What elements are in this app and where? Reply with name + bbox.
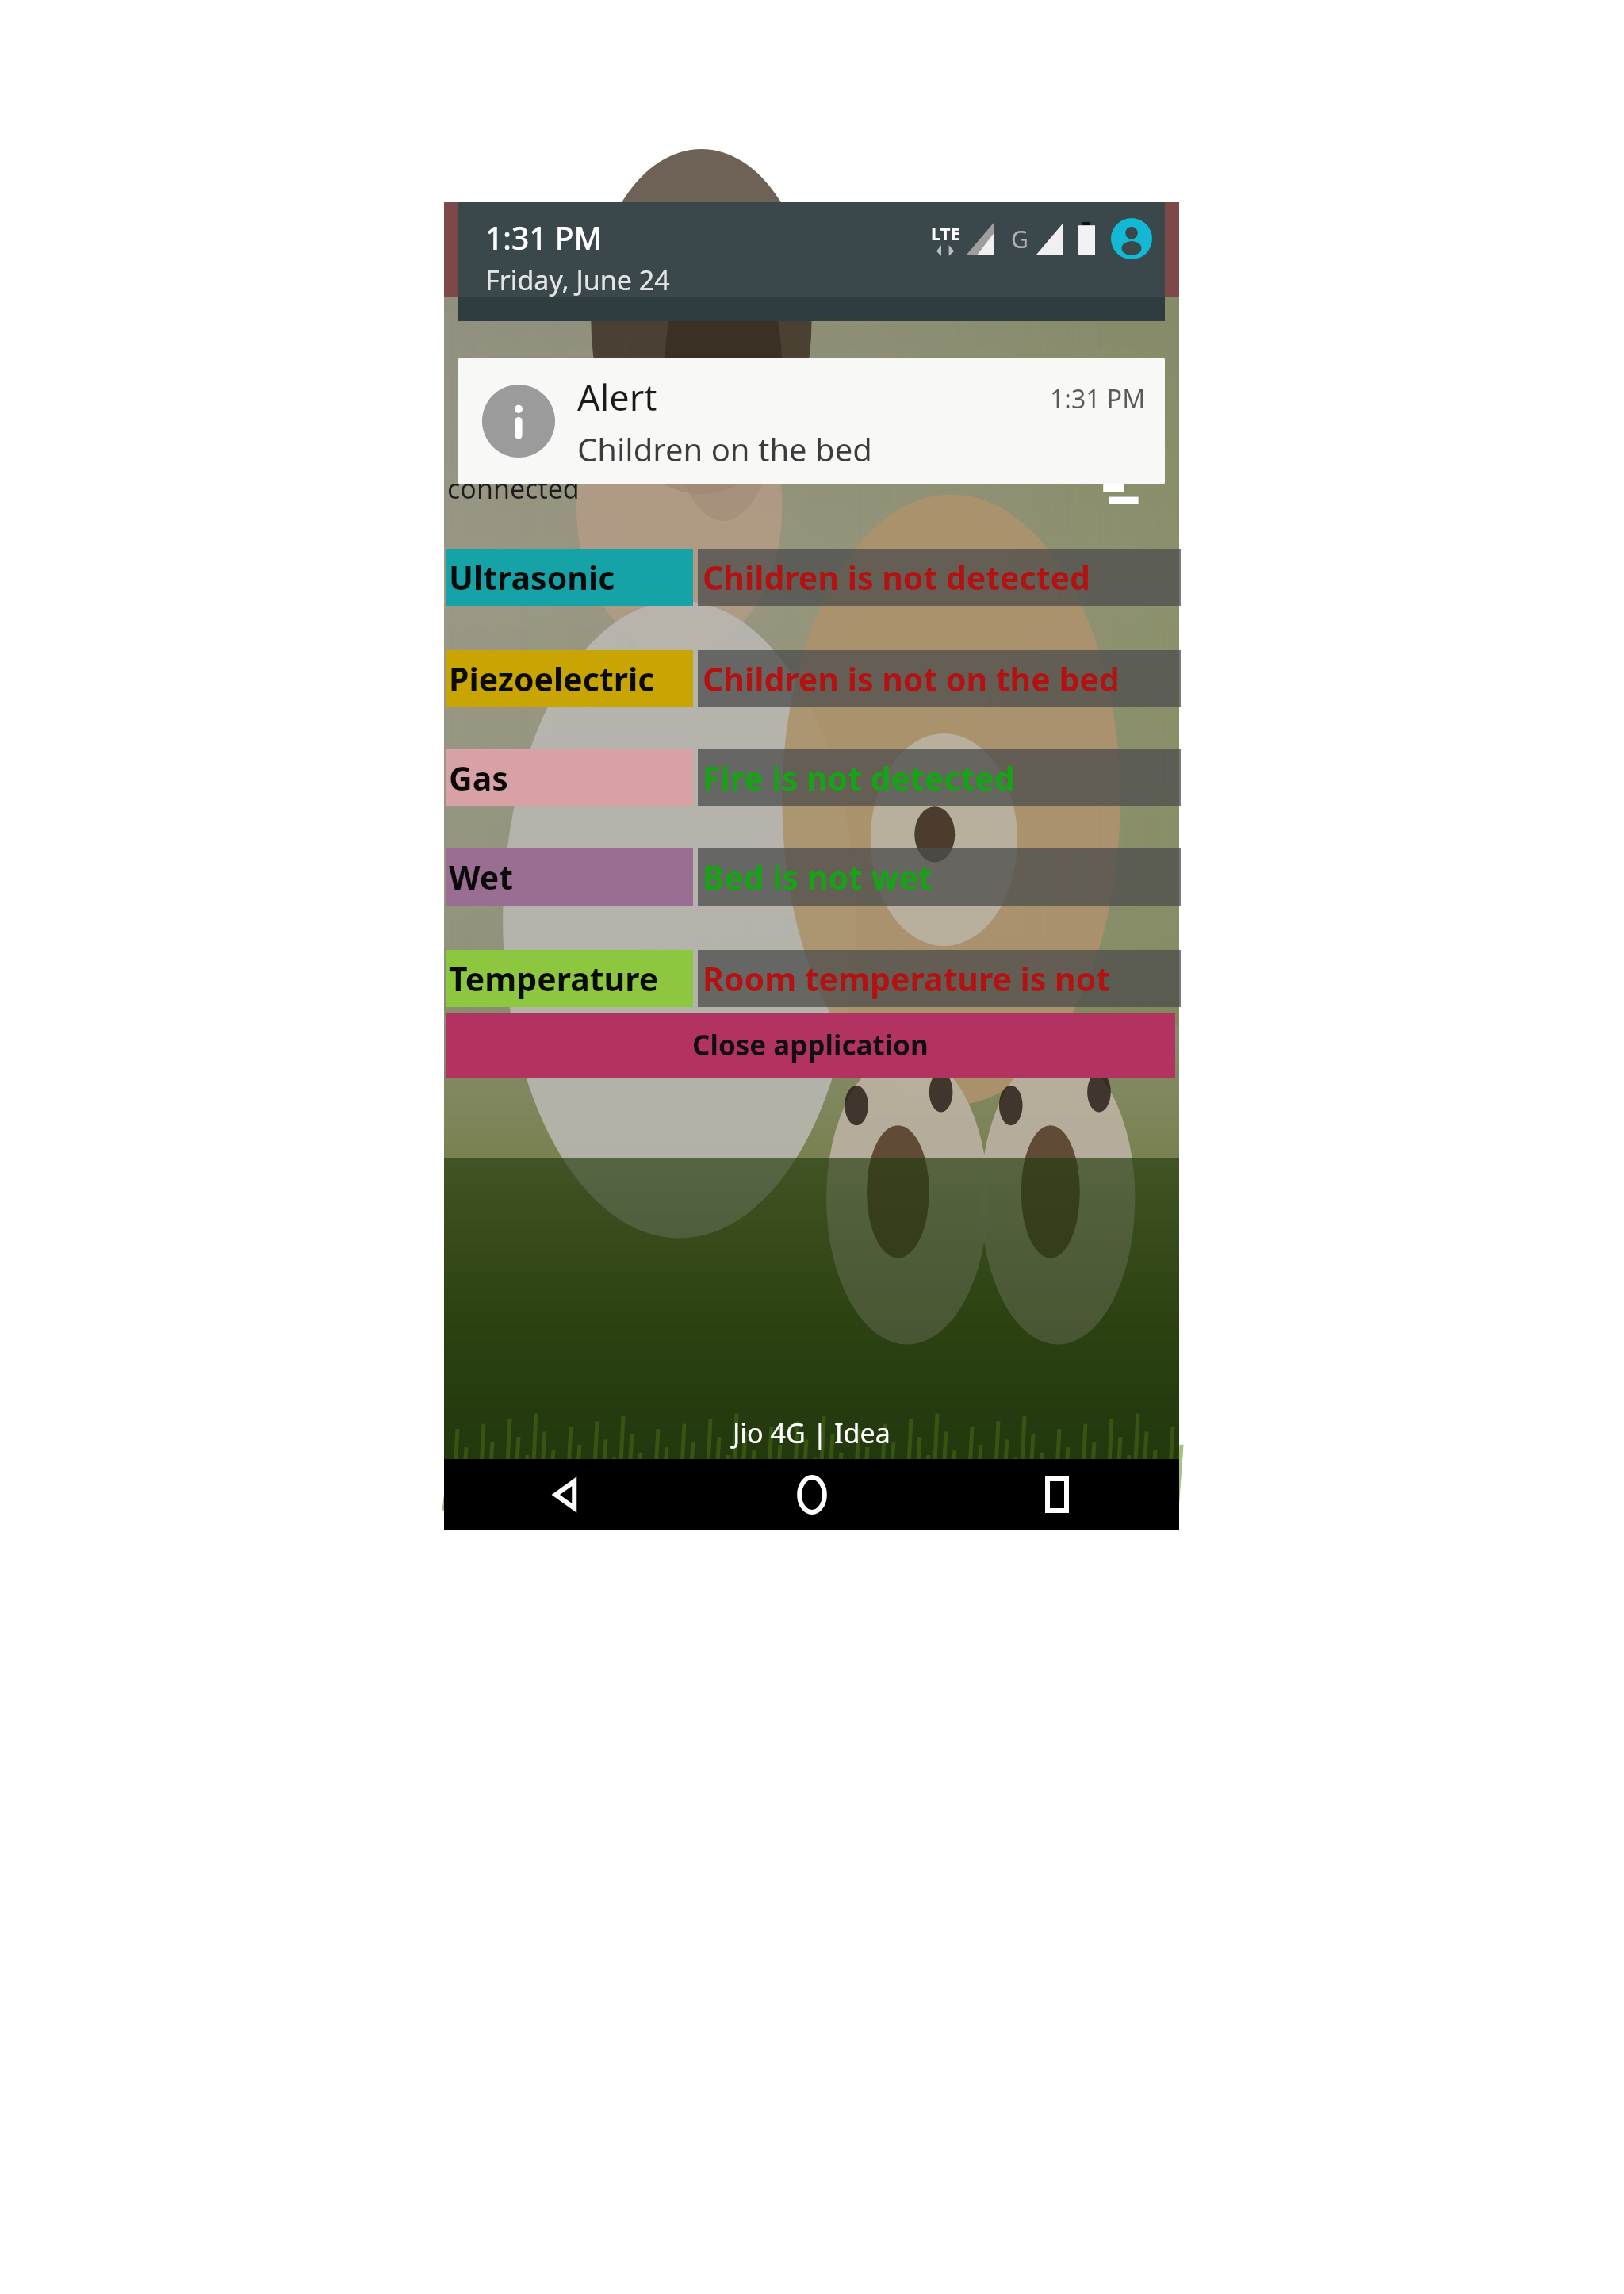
button[interactable]: Recents <box>934 1459 1179 1530</box>
staticText: Jio 4G | Idea <box>733 1415 891 1451</box>
staticText: Temperature <box>449 956 659 1001</box>
button[interactable]: Account <box>1111 218 1152 259</box>
button[interactable]: Home <box>689 1459 934 1530</box>
staticText: Close application <box>692 1026 929 1064</box>
staticText: Wet <box>449 855 514 899</box>
staticText: Alert <box>577 373 657 421</box>
button[interactable]: Alert <box>458 358 1165 484</box>
staticText: Friday, June 24 <box>485 262 670 297</box>
staticText: 1:31 PM <box>1050 381 1146 416</box>
staticText: G <box>1011 223 1028 255</box>
button[interactable]: Back <box>444 1459 689 1530</box>
staticText: Ultrasonic <box>449 555 615 599</box>
staticText: Bed is not wet <box>703 855 933 899</box>
staticText: 1:31 PM <box>485 216 603 259</box>
button[interactable]: Sort <box>1093 465 1140 513</box>
staticText: LTE <box>931 221 960 245</box>
staticText: Baby Monitoring System <box>580 224 1044 276</box>
button[interactable]: Piezoelectric <box>446 650 1181 707</box>
button[interactable]: Close application <box>446 1013 1175 1078</box>
staticText: Fire is not detected <box>703 756 1015 800</box>
staticText: Children on the bed <box>577 427 872 470</box>
staticText: connected <box>447 470 580 507</box>
button[interactable]: Ultrasonic <box>446 549 1181 606</box>
staticText: Children is not detected <box>703 555 1090 599</box>
staticText: Piezoelectric <box>449 657 655 701</box>
button[interactable]: Gas <box>446 749 1181 806</box>
staticText: Children is not on the bed <box>703 657 1120 701</box>
staticText: Room temperature is not normal <box>703 956 1181 1001</box>
staticText: Gas <box>449 756 508 800</box>
button[interactable]: Temperature <box>446 950 1181 1007</box>
button[interactable]: Wet <box>446 848 1181 906</box>
